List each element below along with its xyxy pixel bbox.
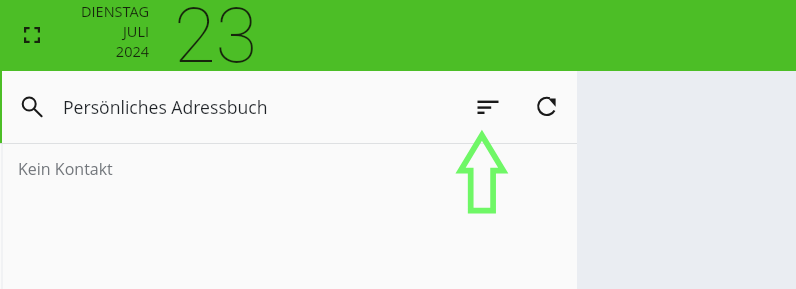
staticText: 2024: [115, 42, 149, 62]
staticText: Kein Kontakt: [18, 158, 113, 180]
button[interactable]: Kein Kontakt: [0, 144, 577, 193]
button[interactable]: Refresh: [524, 85, 568, 129]
button[interactable]: Search: [8, 85, 52, 129]
staticText: Persönliches Adressbuch: [63, 95, 268, 119]
button[interactable]: Fullscreen: [8, 11, 56, 59]
staticText: DIENSTAG: [80, 2, 149, 22]
staticText: 23: [174, 0, 258, 80]
staticText: JULI: [123, 22, 149, 42]
button[interactable]: Sort: [466, 85, 510, 129]
